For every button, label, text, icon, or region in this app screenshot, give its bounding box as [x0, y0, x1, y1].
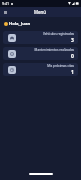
staticText: Menú	[34, 9, 47, 15]
staticText: Vehículos registrados	[42, 32, 74, 36]
button[interactable]: Mis próximas citas	[3, 63, 78, 76]
staticText: Mis próximas citas	[47, 64, 74, 68]
button[interactable]: Mantenimientos realizados	[3, 47, 78, 60]
staticText: 3	[71, 37, 74, 44]
staticText: 9:41	[2, 1, 10, 6]
staticText: 0	[71, 53, 74, 60]
button[interactable]: Menu	[2, 9, 8, 15]
staticText: 1	[71, 69, 74, 76]
button[interactable]: Vehículos registrados	[3, 31, 78, 44]
staticText: Mantenimientos realizados	[34, 48, 74, 52]
staticText: Hola, Juan	[9, 21, 31, 27]
